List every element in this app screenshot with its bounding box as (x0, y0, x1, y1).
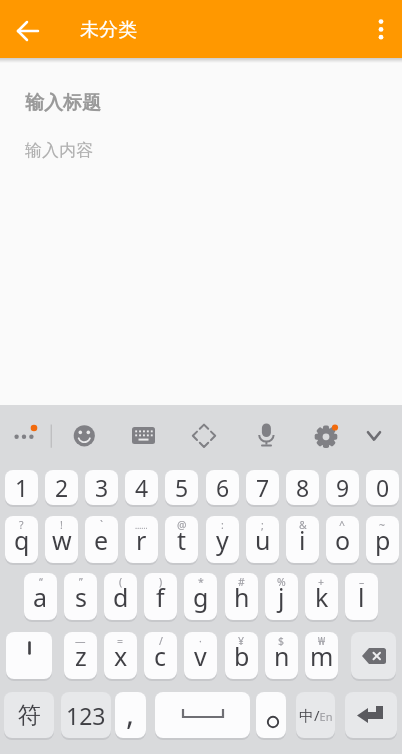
button[interactable]: , (115, 692, 146, 738)
button[interactable]: % (265, 573, 298, 620)
staticText: d (113, 580, 129, 614)
staticText: 4 (135, 472, 149, 503)
staticText: a (33, 580, 48, 614)
staticText: k (315, 580, 329, 614)
button[interactable]: “ (24, 573, 57, 620)
staticText: $ (278, 634, 285, 648)
staticText: 9 (336, 472, 350, 503)
button[interactable] (345, 692, 397, 738)
button[interactable]: ^ (326, 516, 359, 563)
button[interactable]: ” (64, 573, 97, 620)
staticText: b (234, 639, 250, 673)
staticText: o (335, 523, 351, 557)
button[interactable]: ¥ (225, 632, 258, 679)
staticText: 5 (175, 472, 189, 503)
button[interactable]: = (104, 632, 137, 679)
staticText: 1 (15, 472, 29, 503)
staticText: u (255, 523, 271, 557)
staticText: z (75, 639, 87, 673)
staticText: 未分类 (80, 18, 137, 42)
button[interactable]: : (206, 516, 239, 563)
button[interactable]: $ (265, 632, 298, 679)
button[interactable]: 123 (61, 692, 111, 738)
button[interactable]: 0 (366, 470, 399, 505)
staticText: * (198, 575, 204, 589)
button[interactable]: ~ (366, 516, 399, 563)
staticText: e (94, 523, 109, 557)
button[interactable]: 8 (286, 470, 319, 505)
staticText: ` (100, 518, 103, 532)
staticText: / (159, 634, 163, 648)
staticText: # (238, 575, 245, 589)
staticText: — (75, 634, 86, 648)
button[interactable]: @ (165, 516, 198, 563)
button[interactable] (6, 632, 52, 679)
button[interactable]: + (305, 573, 338, 620)
staticText: ? (19, 518, 24, 532)
button[interactable]: 2 (45, 470, 78, 505)
button[interactable]: 5 (165, 470, 198, 505)
staticText: : (221, 518, 224, 532)
staticText: @ (177, 518, 187, 532)
staticText: i (299, 523, 306, 557)
button[interactable]: ₩ (305, 632, 338, 679)
button[interactable]: ( (104, 573, 137, 620)
button[interactable] (0, 0, 56, 58)
staticText: + (318, 575, 325, 589)
staticText: & (299, 518, 307, 532)
staticText: ( (119, 575, 123, 589)
button[interactable]: – (345, 573, 378, 620)
button[interactable]: …… (125, 516, 158, 563)
staticText: 输入标题 (25, 91, 101, 115)
staticText: ^ (339, 518, 346, 532)
button[interactable]: 4 (125, 470, 158, 505)
staticText: 7 (256, 472, 270, 503)
button[interactable]: 3 (85, 470, 118, 505)
button[interactable]: ; (246, 516, 279, 563)
staticText: v (194, 639, 207, 673)
staticText: 中/En (299, 705, 333, 725)
staticText: …… (135, 520, 148, 531)
button[interactable] (351, 632, 396, 679)
staticText: w (52, 523, 72, 557)
staticText: 符 (18, 701, 41, 730)
button[interactable]: # (225, 573, 258, 620)
staticText: s (75, 580, 87, 614)
button[interactable]: 6 (206, 470, 239, 505)
button[interactable]: 1 (5, 470, 38, 505)
staticText: h (234, 580, 250, 614)
button[interactable] (256, 692, 286, 738)
staticText: , (126, 693, 135, 734)
button[interactable]: · (184, 632, 217, 679)
staticText: c (154, 639, 167, 673)
button[interactable]: ) (144, 573, 177, 620)
staticText: x (114, 639, 128, 673)
staticText: ¥ (238, 634, 245, 648)
staticText: · (199, 634, 202, 648)
button[interactable]: 9 (326, 470, 359, 505)
button[interactable]: — (64, 632, 97, 679)
button[interactable] (155, 692, 250, 738)
staticText: ₩ (318, 634, 326, 648)
staticText: y (216, 523, 229, 557)
button[interactable]: / (144, 632, 177, 679)
button[interactable]: & (286, 516, 319, 563)
staticText: 6 (216, 472, 230, 503)
button[interactable]: 7 (246, 470, 279, 505)
button[interactable]: 符 (4, 692, 54, 738)
staticText: “ (39, 575, 43, 589)
button[interactable]: 中/En (296, 692, 335, 738)
staticText: r (136, 523, 147, 557)
button[interactable]: ! (45, 516, 78, 563)
staticText: j (278, 580, 285, 614)
staticText: 输入内容 (25, 140, 93, 161)
staticText: p (375, 523, 391, 557)
button[interactable]: ? (5, 516, 38, 563)
button[interactable]: ` (85, 516, 118, 563)
staticText: m (310, 639, 334, 673)
button[interactable] (360, 0, 402, 58)
staticText: t (177, 523, 187, 557)
button[interactable]: * (184, 573, 217, 620)
staticText: % (277, 575, 286, 589)
staticText: 0 (376, 472, 390, 503)
